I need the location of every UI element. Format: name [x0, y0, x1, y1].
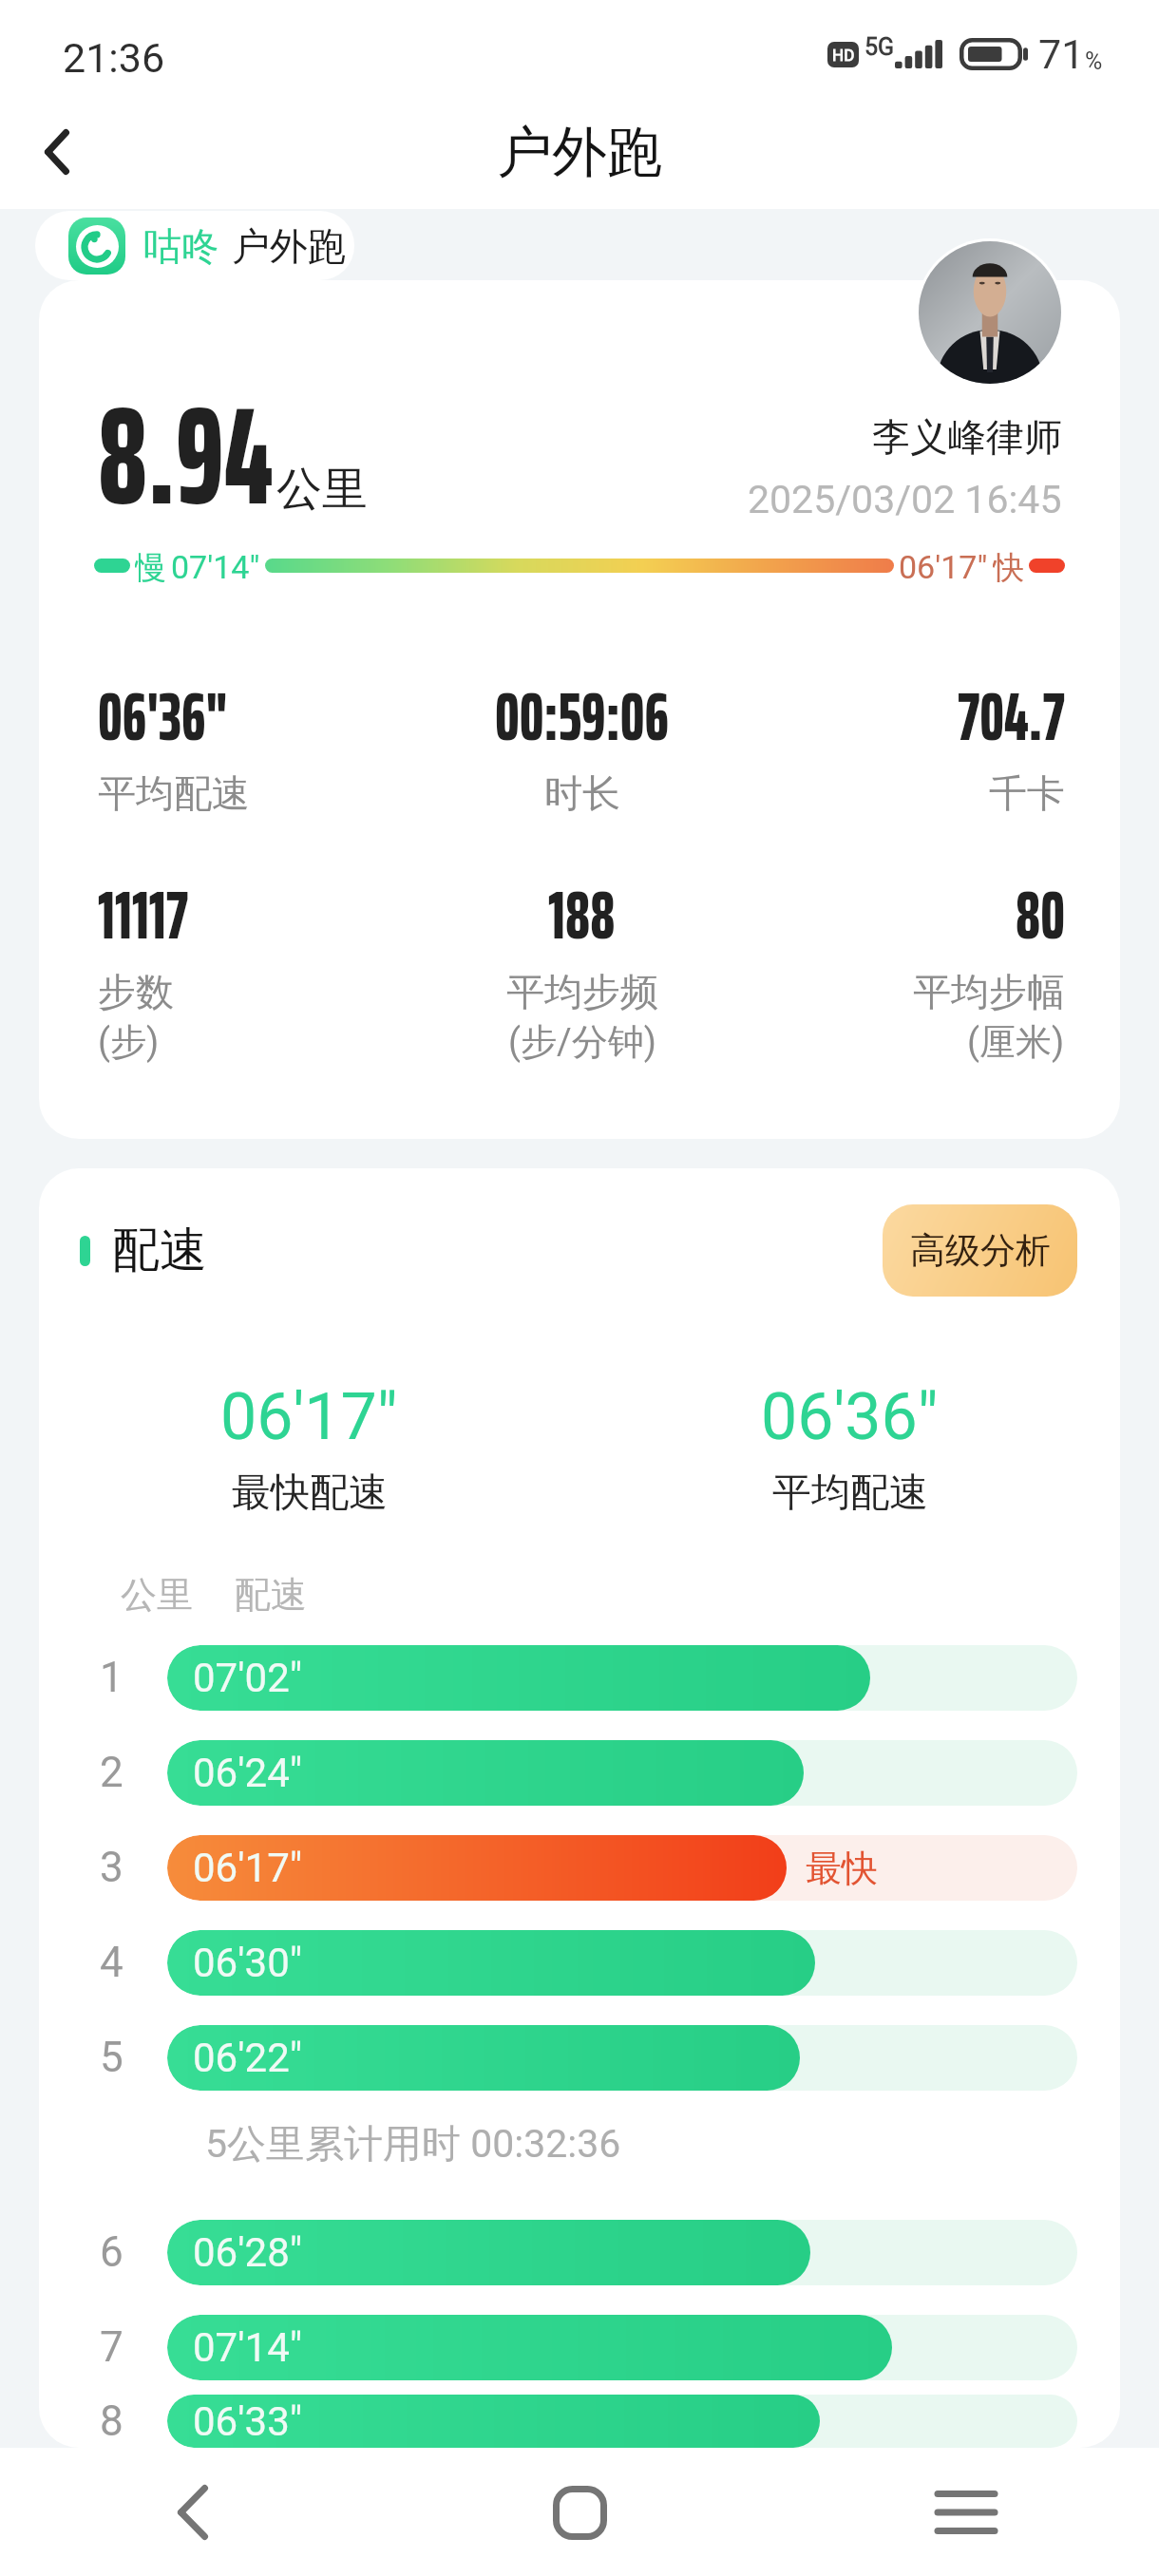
staticText: 06'22"	[193, 2035, 303, 2081]
staticText: 06'36"	[98, 662, 229, 769]
staticText: 704.7	[958, 662, 1065, 769]
staticText: 最快配速	[232, 1468, 388, 1518]
staticText: 06'33"	[193, 2398, 303, 2445]
staticText: 1	[100, 1653, 123, 1702]
staticText: 5	[100, 2033, 123, 2082]
staticText: (步/分钟)	[508, 1019, 656, 1065]
button[interactable]: 咕咚	[35, 211, 354, 280]
staticText: 71	[1038, 30, 1085, 78]
staticText: 188	[548, 861, 616, 968]
staticText: 06'30"	[193, 1940, 303, 1986]
button[interactable]: 3	[39, 1820, 1120, 1915]
button[interactable]: 8	[39, 2395, 1120, 2448]
staticText: 21:36	[63, 34, 165, 82]
staticText: 千卡	[989, 769, 1065, 817]
staticText: 平均步频	[506, 968, 658, 1015]
button[interactable]: 1	[39, 1630, 1120, 1725]
staticText: (步)	[98, 1019, 160, 1065]
staticText: 慢	[135, 548, 166, 582]
button[interactable]: 4	[39, 1915, 1120, 2010]
button[interactable]: Home	[518, 2451, 641, 2574]
staticText: 06'17"	[193, 1845, 303, 1891]
staticText: HD	[832, 46, 855, 65]
button[interactable]: 2	[39, 1725, 1120, 1820]
staticText: 时长	[544, 769, 620, 817]
staticText: 6	[100, 2227, 123, 2277]
staticText: 咕咚	[143, 222, 219, 270]
staticText: 户外跑	[232, 222, 346, 270]
staticText: 7	[100, 2322, 123, 2372]
staticText: 步数	[98, 968, 174, 1015]
staticText: 8	[100, 2396, 123, 2446]
staticText: 5公里累计用时 00:32:36	[205, 2120, 621, 2169]
staticText: 平均配速	[772, 1468, 928, 1518]
button[interactable]: Back	[131, 2451, 255, 2574]
staticText: 00:59:06	[495, 662, 669, 769]
staticText: 配速	[235, 1572, 307, 1618]
staticText: 公里	[121, 1572, 193, 1618]
button[interactable]: Back	[0, 95, 114, 209]
staticText: 8.94	[98, 349, 273, 564]
staticText: 最快	[806, 1846, 878, 1891]
button[interactable]: 6	[39, 2205, 1120, 2300]
staticText: 06'24"	[193, 1750, 303, 1796]
staticText: 11117	[98, 861, 188, 968]
staticText: 李义峰律师	[872, 413, 1062, 461]
button[interactable]: 7	[39, 2300, 1120, 2395]
staticText: %	[1085, 47, 1103, 75]
staticText: 07'02"	[193, 1655, 303, 1701]
button[interactable]: 5	[39, 2010, 1120, 2105]
button[interactable]: Recent apps	[904, 2451, 1028, 2574]
staticText: 06'28"	[193, 2229, 303, 2276]
staticText: 公里	[276, 461, 368, 518]
staticText: (厘米)	[967, 1019, 1065, 1065]
staticText: 快	[993, 548, 1024, 582]
staticText: 5G	[864, 33, 895, 61]
staticText: 4	[100, 1938, 123, 1987]
button[interactable]: 高级分析	[883, 1204, 1077, 1297]
staticText: 3	[100, 1843, 123, 1892]
staticText: 户外跑	[497, 118, 662, 187]
staticText: 07'14"	[193, 2324, 303, 2371]
staticText: 07'14"	[171, 548, 260, 582]
staticText: 80	[1016, 861, 1065, 968]
staticText: 2025/03/02 16:45	[748, 477, 1062, 522]
staticText: 06'17"	[220, 1379, 398, 1455]
staticText: 配速	[112, 1221, 207, 1280]
staticText: 平均配速	[98, 769, 250, 817]
staticText: 高级分析	[910, 1228, 1051, 1273]
staticText: 06'17"	[899, 548, 988, 582]
staticText: 2	[100, 1748, 123, 1797]
staticText: 06'36"	[761, 1379, 939, 1455]
staticText: 平均步幅	[913, 968, 1065, 1015]
